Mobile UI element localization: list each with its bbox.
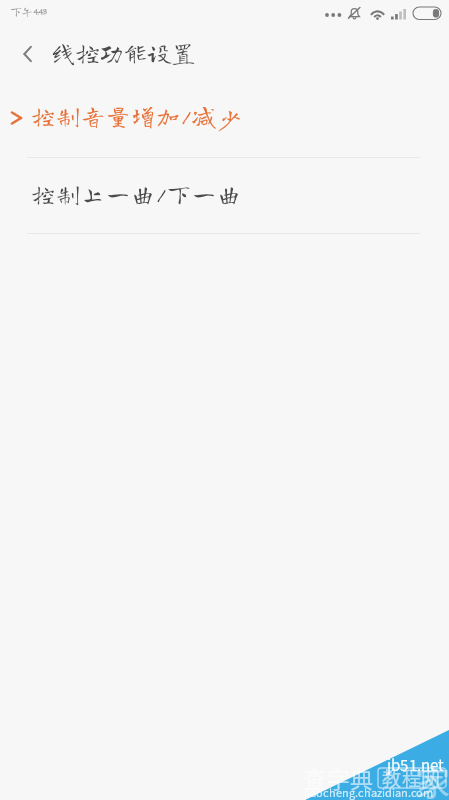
button[interactable] [0, 82, 449, 158]
button[interactable]: Back [6, 28, 50, 79]
button[interactable] [0, 158, 449, 234]
